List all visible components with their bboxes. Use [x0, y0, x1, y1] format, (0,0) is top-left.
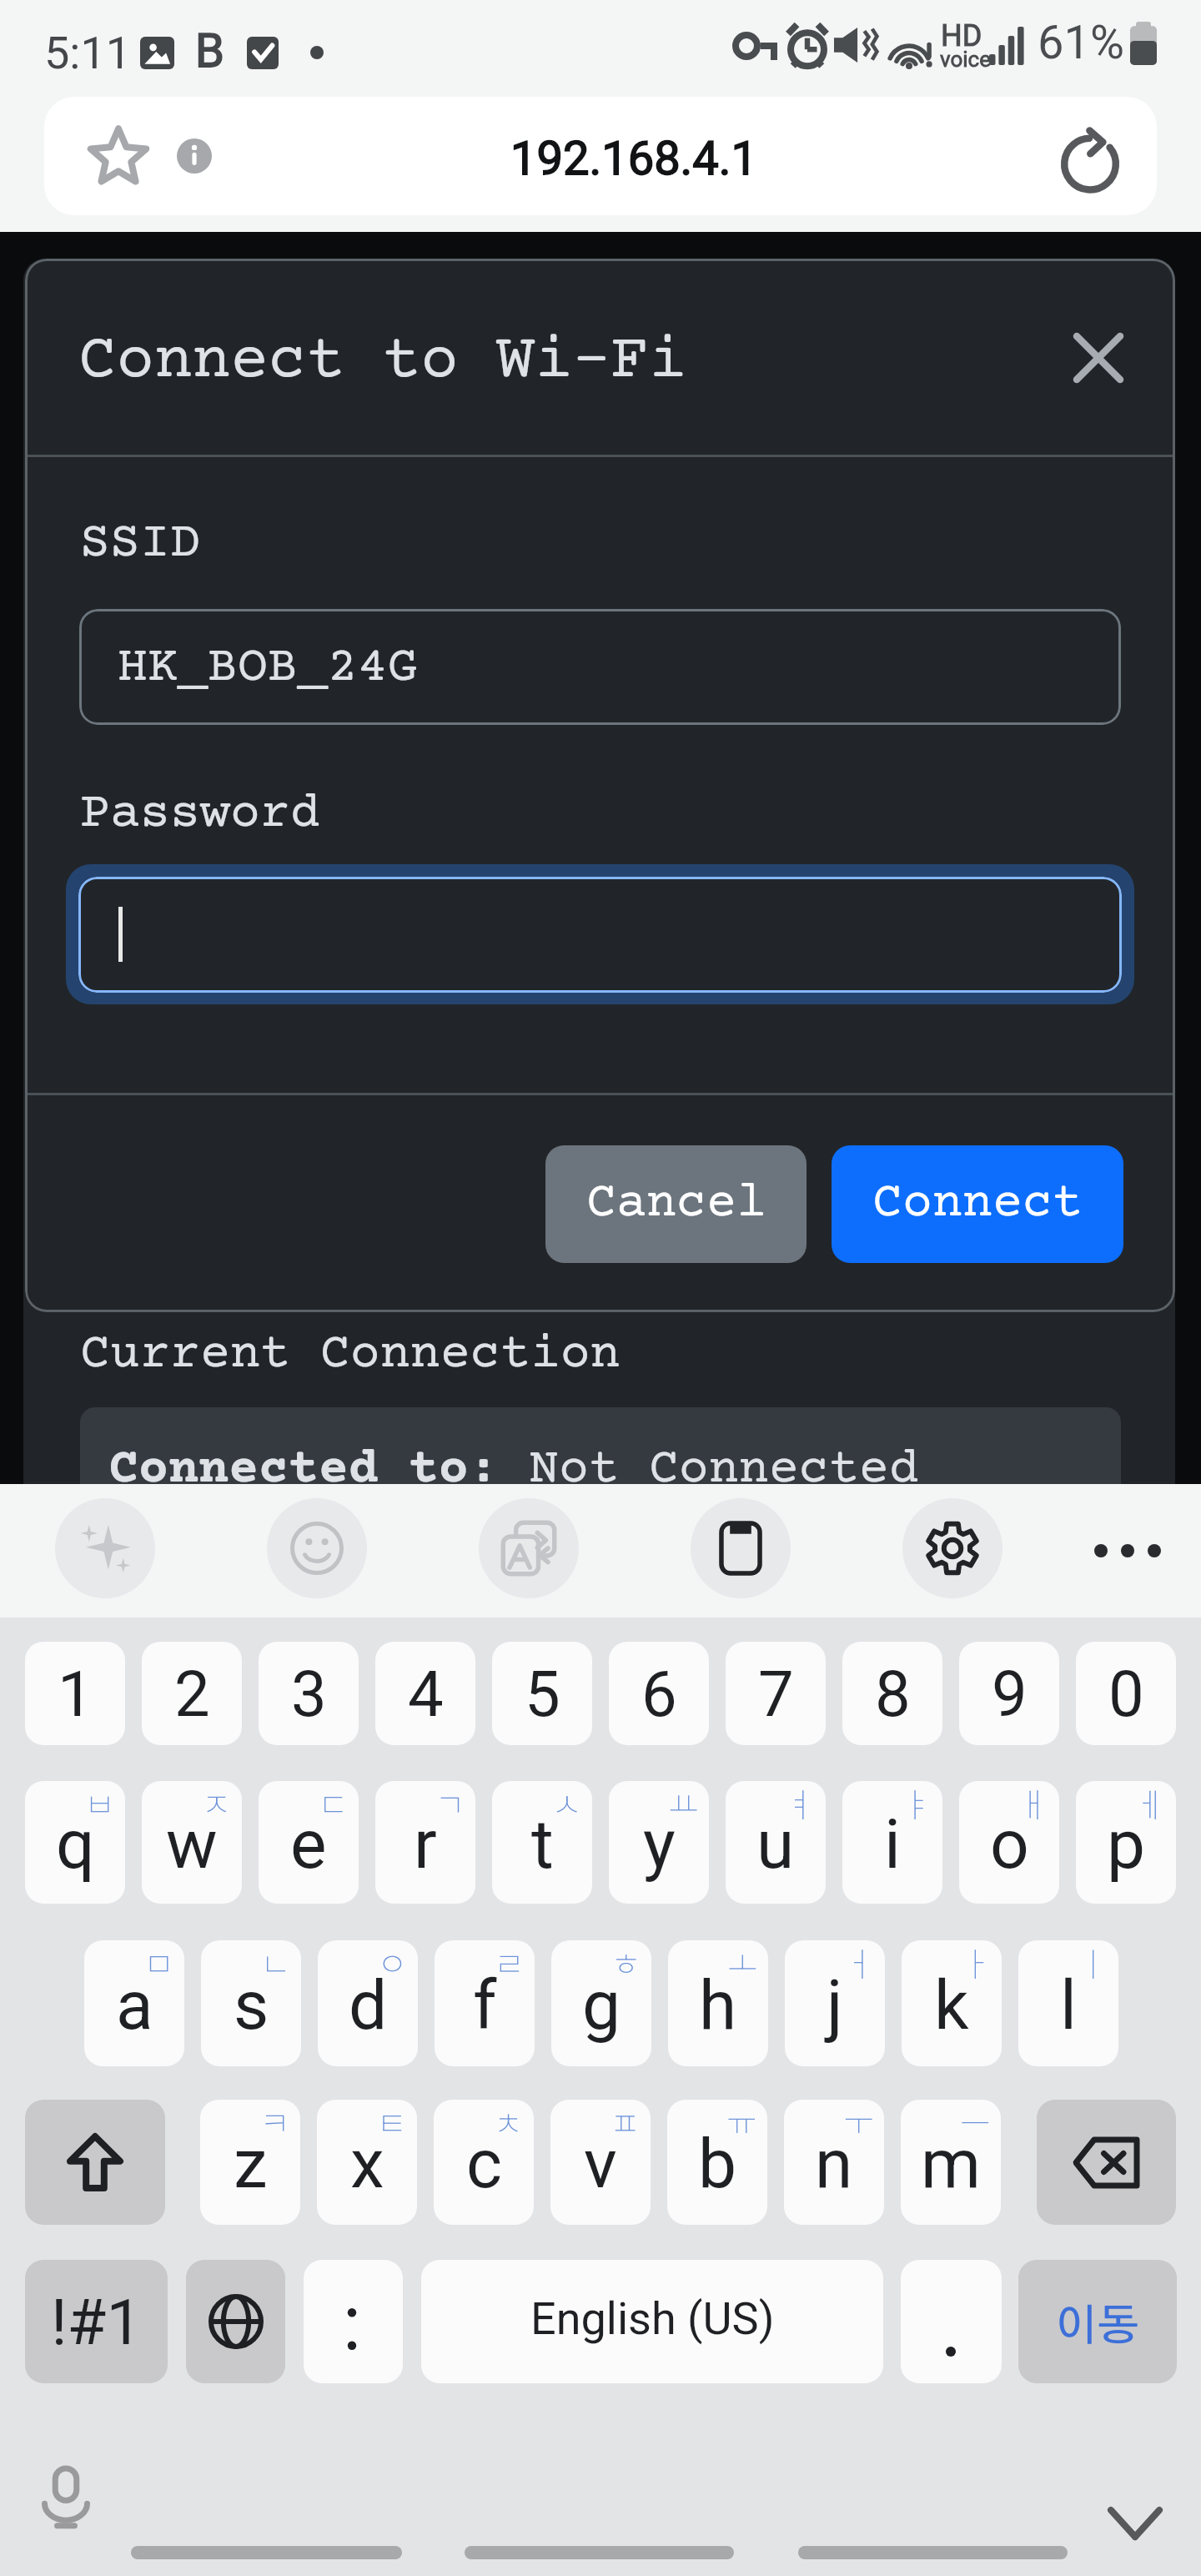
staticText: b: [698, 2124, 737, 2204]
button[interactable]: ㅎ: [551, 1940, 651, 2066]
button[interactable]: 0: [1076, 1642, 1176, 1745]
staticText: HK_BOB_24G: [118, 641, 418, 697]
staticText: p: [1107, 1804, 1146, 1884]
staticText: 9: [992, 1657, 1028, 1731]
staticText: q: [56, 1804, 95, 1884]
button[interactable]: ㅅ: [492, 1781, 592, 1904]
staticText: ㅡ: [960, 2100, 991, 2146]
button[interactable]: More options: [1078, 1501, 1178, 1601]
button[interactable]: Clipboard: [691, 1498, 791, 1598]
button[interactable]: ㅇ: [318, 1940, 418, 2066]
staticText: ㅣ: [1078, 1940, 1108, 1986]
staticText: ㅍ: [610, 2100, 641, 2146]
button[interactable]: 8: [842, 1642, 942, 1745]
button[interactable]: ㅁ: [84, 1940, 184, 2066]
staticText: ㅛ: [668, 1781, 699, 1827]
button[interactable]: ㅡ: [901, 2100, 1001, 2225]
button[interactable]: HK_BOB_24G: [79, 609, 1121, 725]
button[interactable]: ㅊ: [434, 2100, 534, 2225]
button[interactable]: Bookmark: [68, 106, 168, 206]
button[interactable]: Bookmark: [44, 97, 1157, 215]
button[interactable]: ㅋ: [200, 2100, 300, 2225]
staticText: ㅌ: [376, 2100, 407, 2146]
button[interactable]: Emoji: [267, 1498, 367, 1598]
staticText: ㄱ: [435, 1781, 465, 1827]
button[interactable]: Voice input: [18, 2452, 113, 2547]
button[interactable]: ㄹ: [435, 1940, 535, 2066]
staticText: ㅜ: [843, 2100, 874, 2146]
button[interactable]: ㅑ: [842, 1781, 942, 1904]
button[interactable]: !#1: [25, 2260, 168, 2383]
staticText: ㅅ: [551, 1781, 582, 1827]
button[interactable]: Translate: [479, 1498, 579, 1598]
button[interactable]: ㅌ: [317, 2100, 417, 2225]
staticText: 1: [58, 1657, 93, 1731]
staticText: ㅓ: [844, 1940, 875, 1986]
button[interactable]: Cancel: [545, 1145, 807, 1263]
button[interactable]: 5: [492, 1642, 592, 1745]
button[interactable]: ㅈ: [142, 1781, 242, 1904]
staticText: 5:11: [44, 27, 132, 79]
button[interactable]: 9: [959, 1642, 1059, 1745]
button[interactable]: ㅍ: [550, 2100, 651, 2225]
staticText: ㅔ: [1135, 1781, 1166, 1827]
button[interactable]: 이동: [1018, 2260, 1177, 2383]
button[interactable]: 7: [726, 1642, 826, 1745]
button[interactable]: Site information: [153, 114, 236, 198]
button[interactable]: Colon: [304, 2260, 403, 2383]
staticText: 3: [291, 1657, 327, 1731]
button[interactable]: ㅕ: [726, 1781, 826, 1904]
button[interactable]: ㅂ: [25, 1781, 125, 1904]
button[interactable]: 6: [609, 1642, 709, 1745]
button[interactable]: ㅜ: [784, 2100, 884, 2225]
button[interactable]: 2: [142, 1642, 242, 1745]
button[interactable]: Shift: [25, 2100, 165, 2225]
button[interactable]: Backspace: [1037, 2100, 1176, 2225]
button[interactable]: ㄴ: [201, 1940, 301, 2066]
button[interactable]: ㅓ: [785, 1940, 885, 2066]
staticText: x: [350, 2124, 384, 2204]
button[interactable]: ㄷ: [259, 1781, 359, 1904]
button[interactable]: Period: [901, 2260, 1002, 2383]
button[interactable]: 4: [375, 1642, 475, 1745]
staticText: 6: [641, 1657, 677, 1731]
button[interactable]: Reload: [1040, 106, 1140, 206]
button[interactable]: [78, 877, 1122, 993]
staticText: 192.168.4.1: [510, 131, 758, 186]
button[interactable]: Settings: [902, 1498, 1003, 1598]
button[interactable]: Suggestions: [55, 1498, 155, 1598]
staticText: voice: [940, 47, 991, 72]
button[interactable]: Close: [1057, 316, 1140, 400]
staticText: j: [827, 1965, 843, 2045]
staticText: f: [473, 1965, 497, 2045]
button[interactable]: ㅠ: [667, 2100, 767, 2225]
button[interactable]: Connect: [832, 1145, 1123, 1263]
button[interactable]: ㅔ: [1076, 1781, 1176, 1904]
staticText: r: [414, 1804, 437, 1884]
button[interactable]: Hide keyboard: [1088, 2477, 1182, 2570]
staticText: B: [195, 23, 224, 78]
button[interactable]: Change language: [186, 2260, 285, 2383]
staticText: d: [349, 1965, 388, 2045]
button[interactable]: ㅏ: [902, 1940, 1002, 2066]
button[interactable]: ㅣ: [1018, 1940, 1118, 2066]
staticText: e: [290, 1804, 327, 1884]
button[interactable]: ㅗ: [668, 1940, 768, 2066]
staticText: 이동: [1055, 2306, 1140, 2349]
staticText: w: [166, 1804, 218, 1884]
staticText: i: [884, 1804, 901, 1884]
button[interactable]: ㅐ: [959, 1781, 1059, 1904]
button[interactable]: 1: [25, 1642, 125, 1745]
staticText: ㅁ: [143, 1940, 174, 1986]
staticText: ㅊ: [493, 2100, 524, 2146]
button[interactable]: English (US): [421, 2260, 883, 2383]
staticText: 5: [525, 1657, 560, 1731]
staticText: ㅋ: [259, 2100, 290, 2146]
button[interactable]: 3: [259, 1642, 359, 1745]
button[interactable]: ㅛ: [609, 1781, 709, 1904]
staticText: 8: [875, 1657, 911, 1731]
staticText: n: [815, 2124, 853, 2204]
staticText: ㄹ: [494, 1940, 525, 1986]
staticText: English (US): [530, 2292, 775, 2345]
button[interactable]: ㄱ: [375, 1781, 475, 1904]
